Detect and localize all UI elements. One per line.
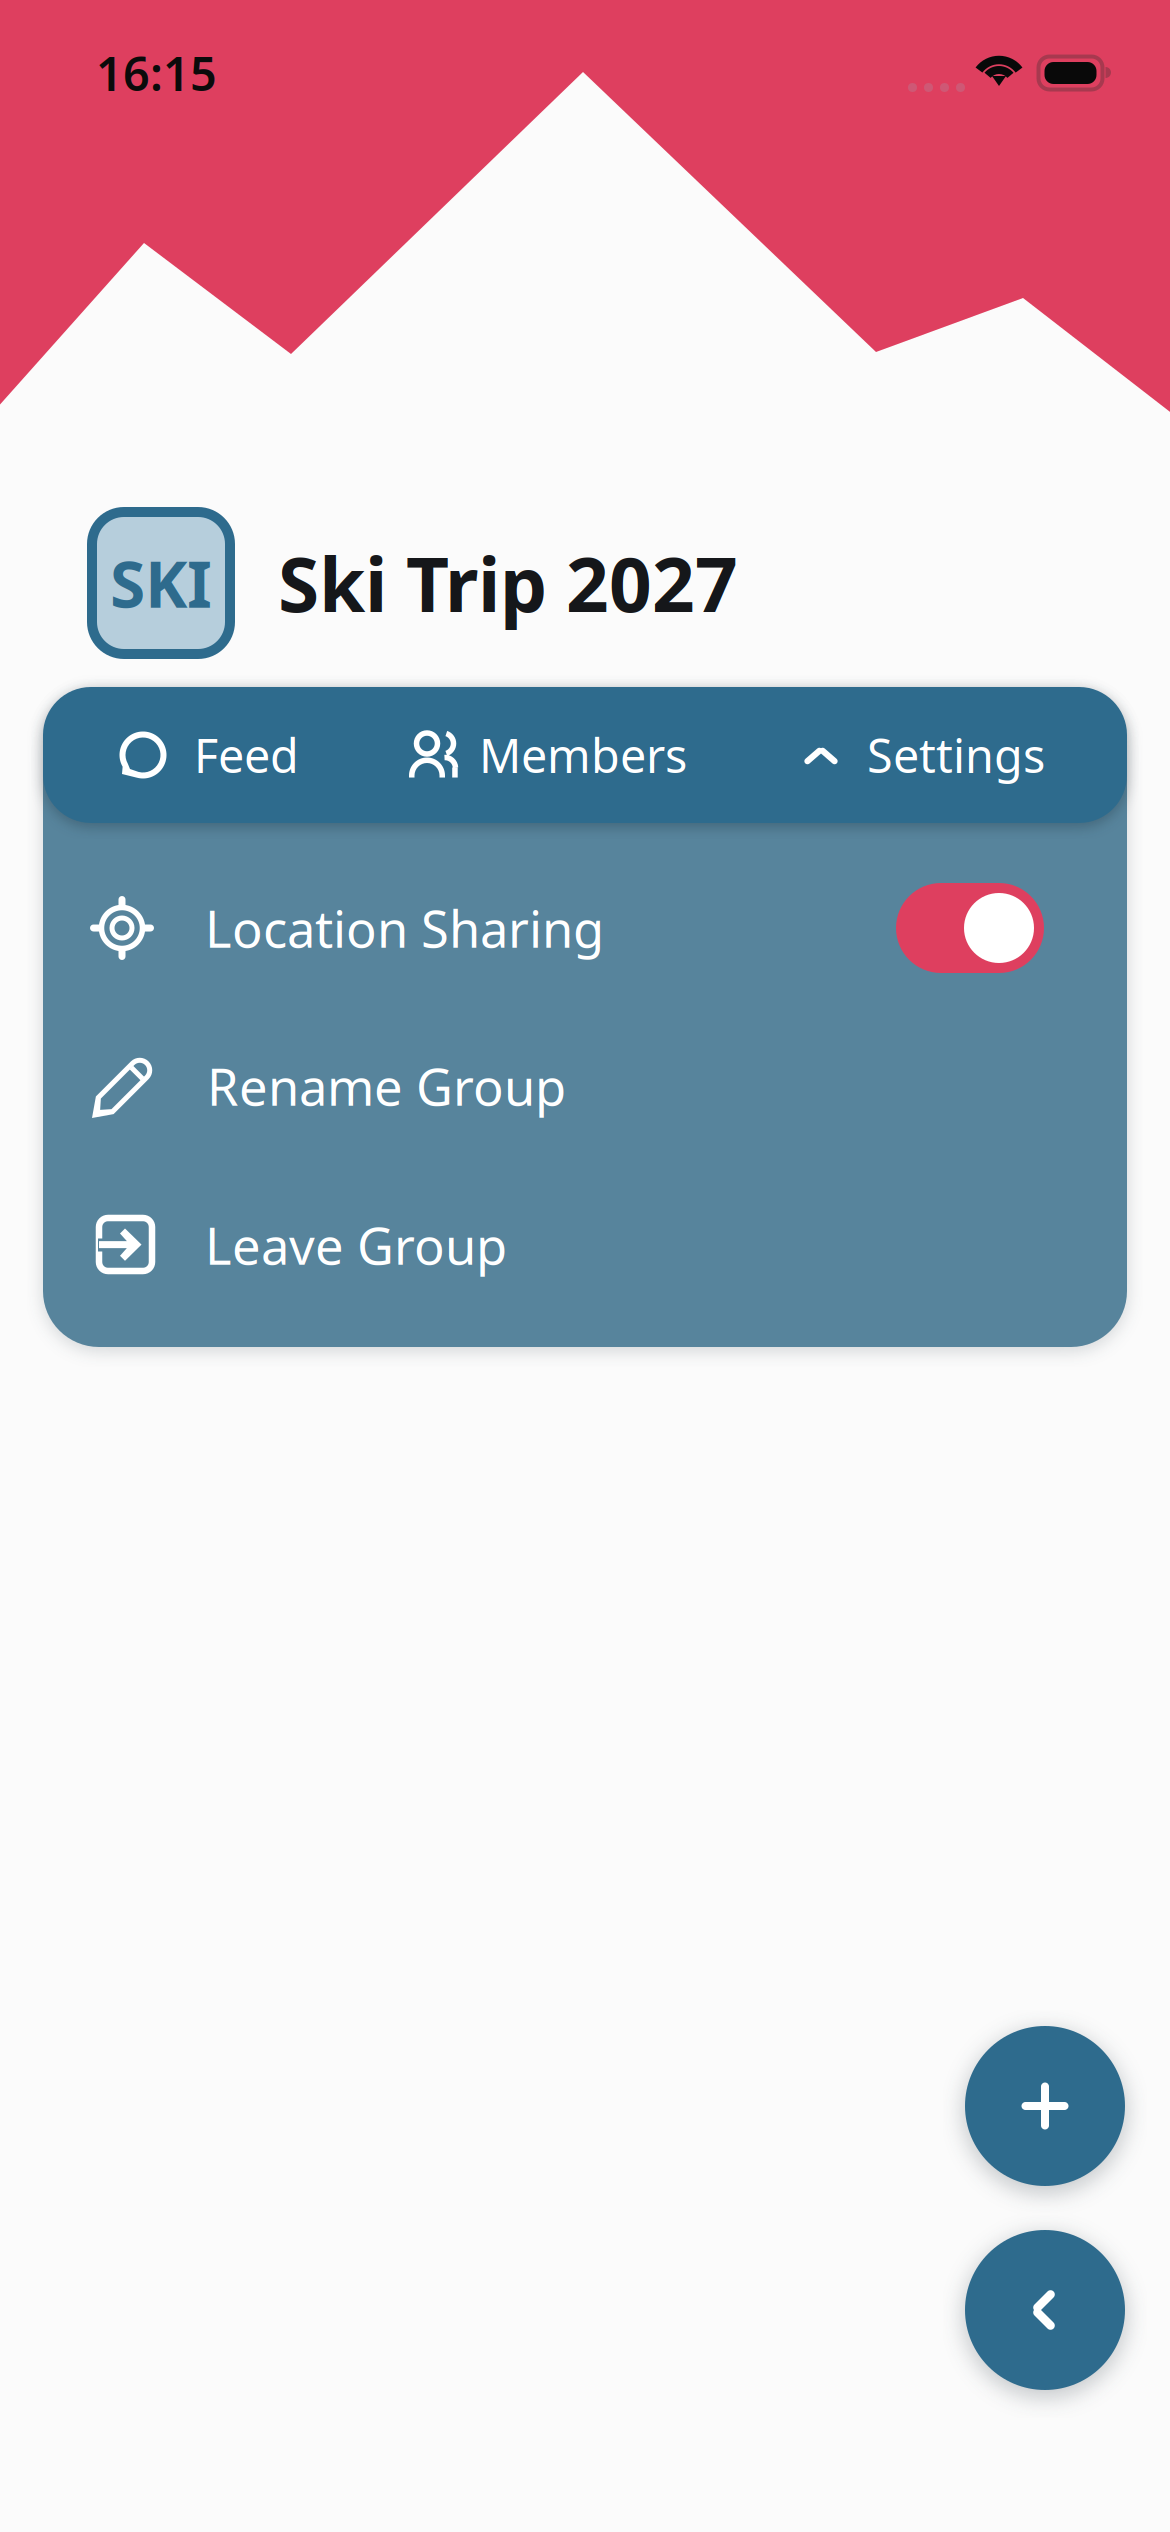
button[interactable]: Leave Group <box>43 1166 1127 1324</box>
staticText: 16:15 <box>96 42 217 104</box>
staticText: Ski Trip 2027 <box>278 533 738 633</box>
button[interactable]: Members <box>43 687 743 823</box>
button[interactable]: Settings <box>43 687 1127 823</box>
button[interactable]: Back <box>965 2230 1125 2390</box>
staticText: SKI <box>110 540 212 625</box>
button[interactable]: Add <box>965 2026 1125 2186</box>
staticText: Settings <box>867 724 1045 786</box>
staticText: Members <box>479 724 687 786</box>
staticText: Leave Group <box>205 1211 507 1279</box>
button[interactable]: Feed <box>43 687 363 823</box>
button[interactable]: Location Sharing <box>43 849 1127 1007</box>
button[interactable]: Rename Group <box>43 1007 1127 1165</box>
staticText: Rename Group <box>207 1052 566 1120</box>
staticText: Location Sharing <box>205 894 604 962</box>
staticText: Feed <box>194 724 299 786</box>
